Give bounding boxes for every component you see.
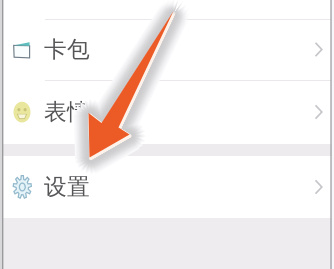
staticText: 卡包 — [44, 36, 90, 63]
button[interactable]: 卡包 — [0, 19, 334, 80]
staticText: 表情 — [44, 98, 90, 126]
button[interactable]: 设置 — [0, 156, 334, 218]
button[interactable]: 表情 — [0, 80, 334, 144]
staticText: 设置 — [44, 173, 90, 201]
